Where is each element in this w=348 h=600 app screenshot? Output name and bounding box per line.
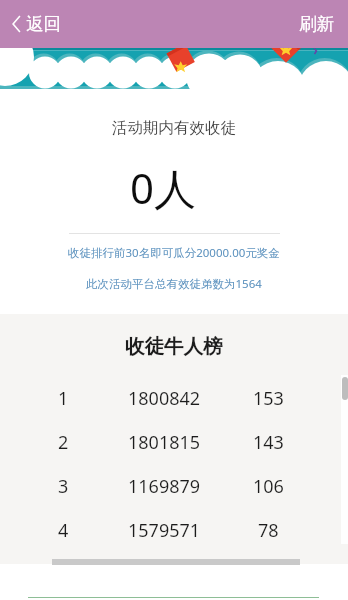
staticText: 1579571 bbox=[128, 518, 201, 543]
staticText: 活动期内有效收徒 bbox=[112, 118, 236, 138]
staticText: 收徒牛人榜 bbox=[125, 334, 223, 359]
button[interactable]: 3 bbox=[0, 464, 348, 508]
staticText: 返回 bbox=[26, 13, 61, 35]
staticText: 1801815 bbox=[128, 430, 201, 455]
staticText: 1 bbox=[58, 386, 69, 411]
staticText: 0人 bbox=[130, 159, 197, 216]
button[interactable]: 2 bbox=[0, 420, 348, 464]
staticText: 2 bbox=[58, 430, 69, 455]
staticText: 78 bbox=[258, 518, 279, 543]
staticText: 1800842 bbox=[128, 386, 201, 411]
staticText: 3 bbox=[58, 474, 69, 499]
button[interactable]: 4 bbox=[0, 508, 348, 552]
staticText: 4 bbox=[58, 518, 69, 543]
staticText: 收徒排行前30名即可瓜分20000.00元奖金 bbox=[68, 245, 280, 261]
button[interactable]: 返回 bbox=[12, 13, 61, 35]
staticText: 1169879 bbox=[128, 474, 201, 499]
staticText: 此次活动平台总有效徒弟数为1564 bbox=[86, 276, 262, 292]
button[interactable]: 1 bbox=[0, 376, 348, 420]
button[interactable]: 刷新 bbox=[299, 13, 334, 35]
staticText: 刷新 bbox=[299, 13, 334, 35]
staticText: 106 bbox=[253, 474, 284, 499]
staticText: 153 bbox=[253, 386, 284, 411]
staticText: 143 bbox=[253, 430, 284, 455]
